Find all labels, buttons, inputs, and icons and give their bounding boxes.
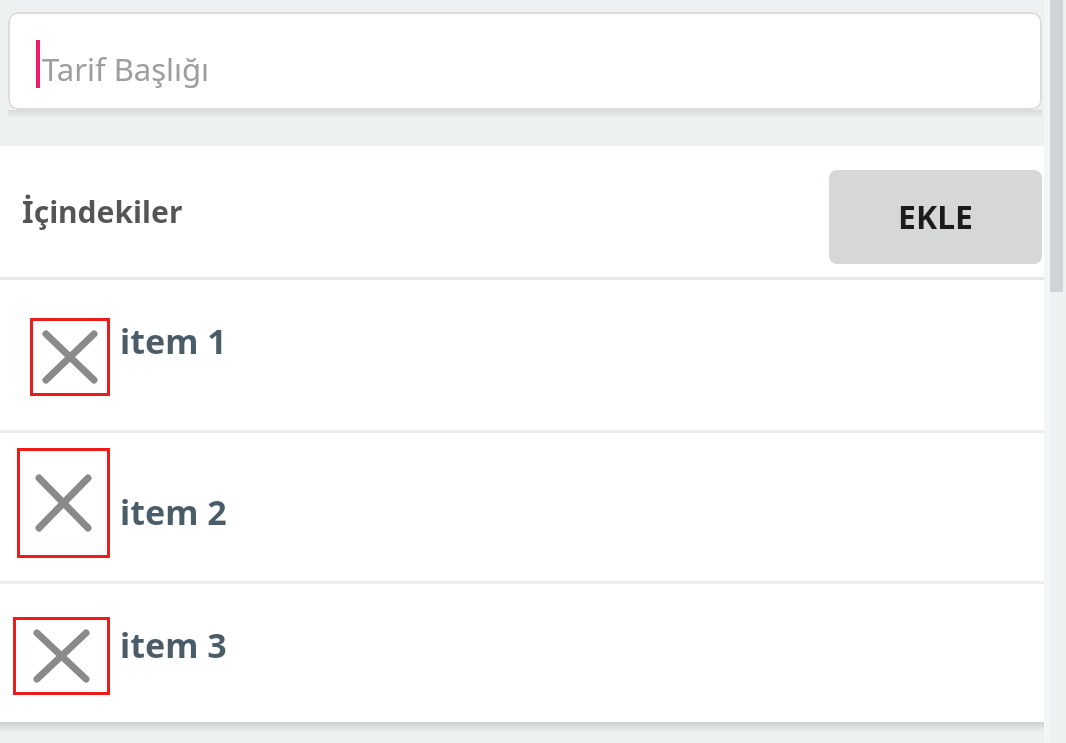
button[interactable]: Sil [17, 448, 110, 558]
button[interactable]: Sil [0, 433, 1066, 583]
staticText: Tarif Başlığı [42, 48, 210, 90]
button[interactable]: Tarif Başlığı [8, 12, 1042, 110]
staticText: İçindekiler [22, 191, 183, 232]
button[interactable]: Sil [13, 617, 110, 695]
staticText: item 2 [120, 489, 227, 535]
staticText: EKLE [898, 195, 973, 239]
button[interactable]: Sil [0, 584, 1066, 722]
button[interactable]: EKLE [829, 170, 1042, 264]
staticText: item 3 [120, 622, 227, 668]
staticText: item 1 [120, 318, 227, 364]
button[interactable]: Sil [0, 280, 1066, 432]
button[interactable]: Sil [30, 318, 110, 396]
